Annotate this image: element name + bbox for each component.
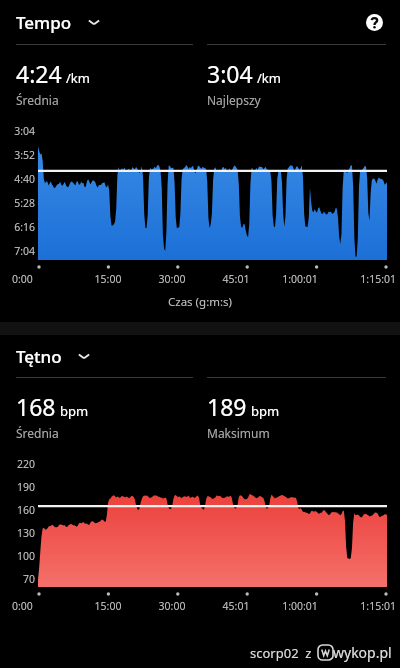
staticText: bpm (60, 402, 89, 420)
staticText: 100 (0, 549, 35, 563)
staticText: 7:04 (0, 244, 35, 258)
button[interactable]: Pomoc (358, 6, 390, 38)
staticText: 3:52 (0, 148, 35, 162)
staticText: /km (66, 69, 90, 87)
staticText: 1:00:01 (268, 272, 332, 286)
staticText: 15:00 (76, 599, 140, 613)
staticText: 3:04 (207, 58, 253, 89)
button[interactable]: Rozwiń tempo (80, 8, 108, 36)
staticText: 190 (0, 480, 35, 494)
staticText: 15:00 (76, 272, 140, 286)
staticText: 30:00 (140, 272, 204, 286)
staticText: 4:24 (16, 58, 62, 89)
staticText: bpm (251, 402, 280, 420)
staticText: 4:40 (0, 172, 35, 186)
staticText: Średnia (16, 92, 59, 108)
staticText: 45:01 (204, 599, 268, 613)
staticText: 130 (0, 526, 35, 540)
staticText: 160 (0, 503, 35, 517)
staticText: 6:16 (0, 220, 35, 234)
staticText: 0:00 (12, 599, 76, 613)
staticText: 220 (0, 457, 35, 471)
button[interactable]: Tętno (16, 342, 98, 370)
staticText: 45:01 (204, 272, 268, 286)
staticText: Tętno (16, 345, 62, 368)
staticText: 1:00:01 (268, 599, 332, 613)
staticText: 168 (16, 391, 56, 422)
staticText: Tempo (16, 11, 72, 34)
staticText: Najlepszy (207, 92, 261, 108)
staticText: 0:00 (12, 272, 76, 286)
staticText: Czas (g:m:s) (0, 294, 400, 310)
staticText: Średnia (16, 425, 59, 441)
staticText: 5:28 (0, 196, 35, 210)
staticText: 3:04 (0, 124, 35, 138)
staticText: scorp02 z (250, 644, 312, 662)
button[interactable]: Tempo (16, 8, 108, 36)
staticText: Maksimum (207, 425, 270, 441)
staticText: 30:00 (140, 599, 204, 613)
staticText: wykop.pl (333, 643, 392, 662)
staticText: /km (257, 69, 281, 87)
staticText: 1:15:01 (332, 272, 396, 286)
staticText: 1:15:01 (332, 599, 396, 613)
staticText: 70 (0, 572, 35, 586)
button[interactable]: Rozwiń tętno (70, 342, 98, 370)
staticText: 189 (207, 391, 247, 422)
